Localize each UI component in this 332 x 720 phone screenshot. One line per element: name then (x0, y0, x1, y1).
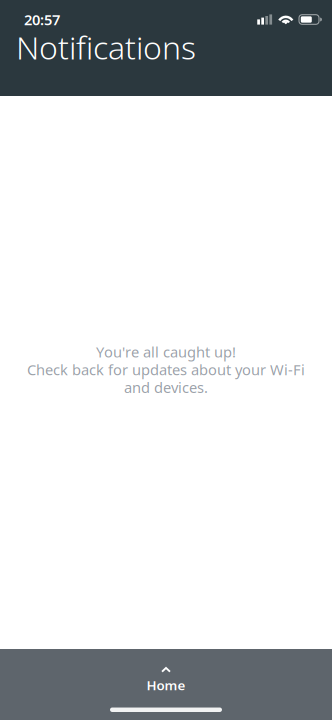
staticText: 20:57 (24, 10, 60, 29)
staticText: Check back for updates about your Wi-Fi (27, 360, 305, 379)
staticText: Notifications (16, 26, 196, 68)
staticText: Home (146, 676, 185, 694)
staticText: You're all caught up! (96, 342, 236, 362)
staticText: and devices. (124, 377, 208, 397)
button[interactable]: Home (116, 649, 216, 701)
